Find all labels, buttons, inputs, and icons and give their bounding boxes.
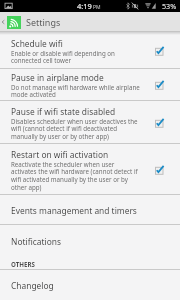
button[interactable]: Toggle <box>153 32 180 69</box>
button[interactable]: Notifications <box>0 225 180 257</box>
button[interactable]: Restart on wifi activation <box>0 144 180 195</box>
staticText: Restart on wifi activation <box>11 149 109 160</box>
button[interactable]: Pause if wifi state disabled <box>0 101 180 144</box>
button[interactable]: Pause in airplane mode <box>0 69 180 101</box>
button[interactable]: Navigate up <box>0 12 6 32</box>
staticText: Settings <box>26 16 61 28</box>
button[interactable]: Toggle <box>153 69 180 101</box>
staticText: Enable or disable wifi depending on conn… <box>11 49 115 65</box>
button[interactable]: Schedule wifi <box>0 32 180 69</box>
staticText: OTHERS <box>11 260 35 268</box>
button[interactable]: Toggle <box>153 101 180 144</box>
other: Toggle <box>155 80 166 90</box>
staticText: Do not manage wifi hardware while airpla… <box>11 83 140 99</box>
staticText: Pause if wifi state disabled <box>11 106 116 117</box>
staticText: Changelog <box>11 280 54 291</box>
other: Toggle <box>155 118 166 128</box>
staticText: Pause in airplane mode <box>11 72 104 83</box>
other: Toggle <box>155 46 166 56</box>
staticText: Disables scheduler when user deactives t… <box>11 117 138 141</box>
staticText: Reactivate the scheduler when user activ… <box>11 160 138 192</box>
button[interactable]: Changelog <box>0 270 180 300</box>
button[interactable]: Toggle <box>153 144 180 195</box>
staticText: Schedule wifi <box>11 38 63 49</box>
staticText: Notifications <box>11 236 61 247</box>
staticText: PM <box>93 4 101 11</box>
staticText: 53% <box>162 1 177 11</box>
button[interactable]: Events management and timers <box>0 195 180 225</box>
staticText: Events management and timers <box>11 205 137 216</box>
staticText: 4:19 <box>77 1 92 11</box>
other: Toggle <box>155 165 166 175</box>
